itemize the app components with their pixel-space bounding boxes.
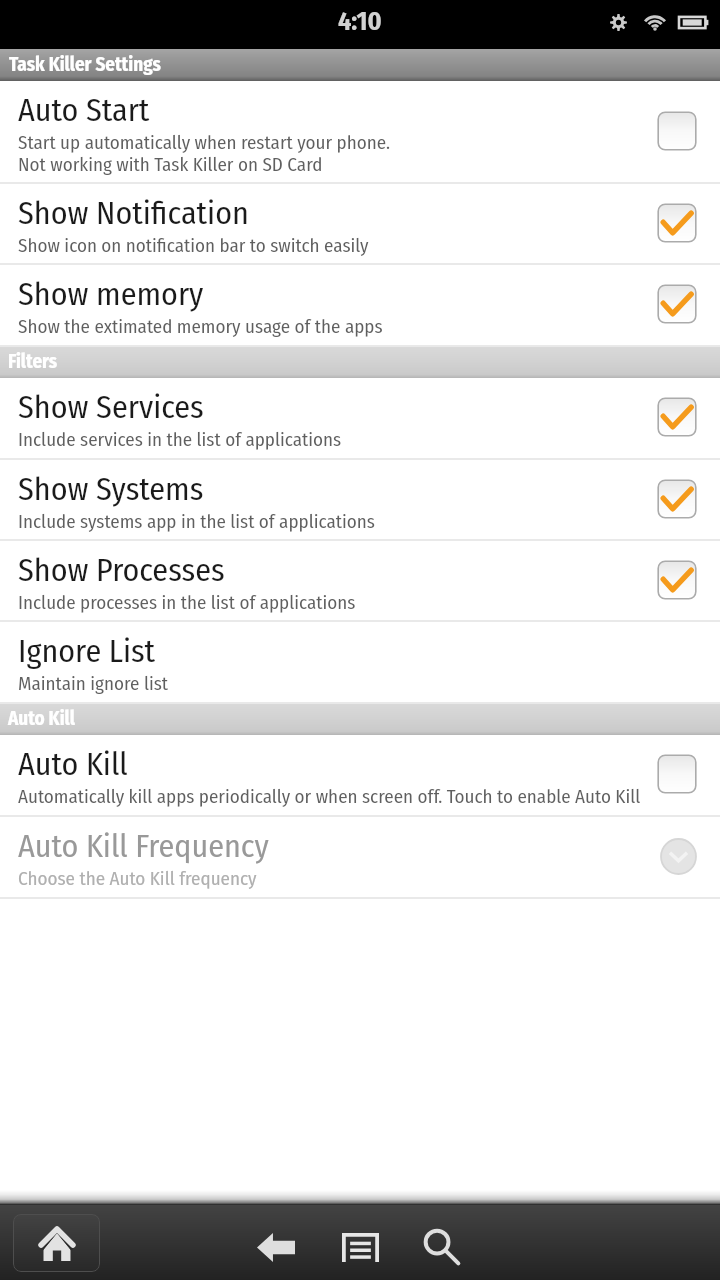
- button[interactable]: Back: [248, 1219, 304, 1275]
- button[interactable]: Show Services: [0, 378, 720, 458]
- staticText: Include services in the list of applicat…: [18, 428, 342, 451]
- staticText: Show memory: [18, 275, 204, 313]
- staticText: Auto Kill: [8, 707, 75, 730]
- staticText: Include processes in the list of applica…: [18, 591, 356, 614]
- button[interactable]: Search: [414, 1219, 470, 1275]
- staticText: Show icon on notification bar to switch …: [18, 234, 369, 257]
- button[interactable]: Ignore List: [0, 622, 720, 702]
- staticText: Auto Kill: [18, 745, 128, 783]
- staticText: Filters: [8, 350, 58, 373]
- staticText: Start up automatically when restart your…: [18, 131, 390, 176]
- staticText: Auto Start: [18, 91, 150, 129]
- staticText: Show Processes: [18, 551, 225, 589]
- staticText: Show Notification: [18, 194, 249, 232]
- button[interactable]: Home: [13, 1214, 100, 1272]
- button[interactable]: Auto Start: [0, 81, 720, 182]
- staticText: Show the extimated memory usage of the a…: [18, 315, 383, 338]
- staticText: Auto Kill Frequency: [18, 827, 269, 865]
- staticText: 4:10: [338, 6, 382, 37]
- button[interactable]: Show Notification: [0, 184, 720, 263]
- staticText: Choose the Auto Kill frequency: [18, 867, 257, 890]
- staticText: Ignore List: [18, 632, 156, 670]
- button[interactable]: Show memory: [0, 265, 720, 345]
- staticText: Include systems app in the list of appli…: [18, 510, 375, 533]
- button[interactable]: Menu: [332, 1219, 388, 1275]
- staticText: Show Services: [18, 388, 204, 426]
- button[interactable]: Auto Kill: [0, 735, 720, 815]
- staticText: Maintain ignore list: [18, 672, 169, 695]
- staticText: Automatically kill apps periodically or …: [18, 785, 641, 808]
- staticText: Show Systems: [18, 470, 204, 508]
- button[interactable]: Show Systems: [0, 460, 720, 539]
- button[interactable]: Auto Kill Frequency: [0, 817, 720, 897]
- staticText: Task Killer Settings: [9, 53, 161, 76]
- button[interactable]: Show Processes: [0, 541, 720, 620]
